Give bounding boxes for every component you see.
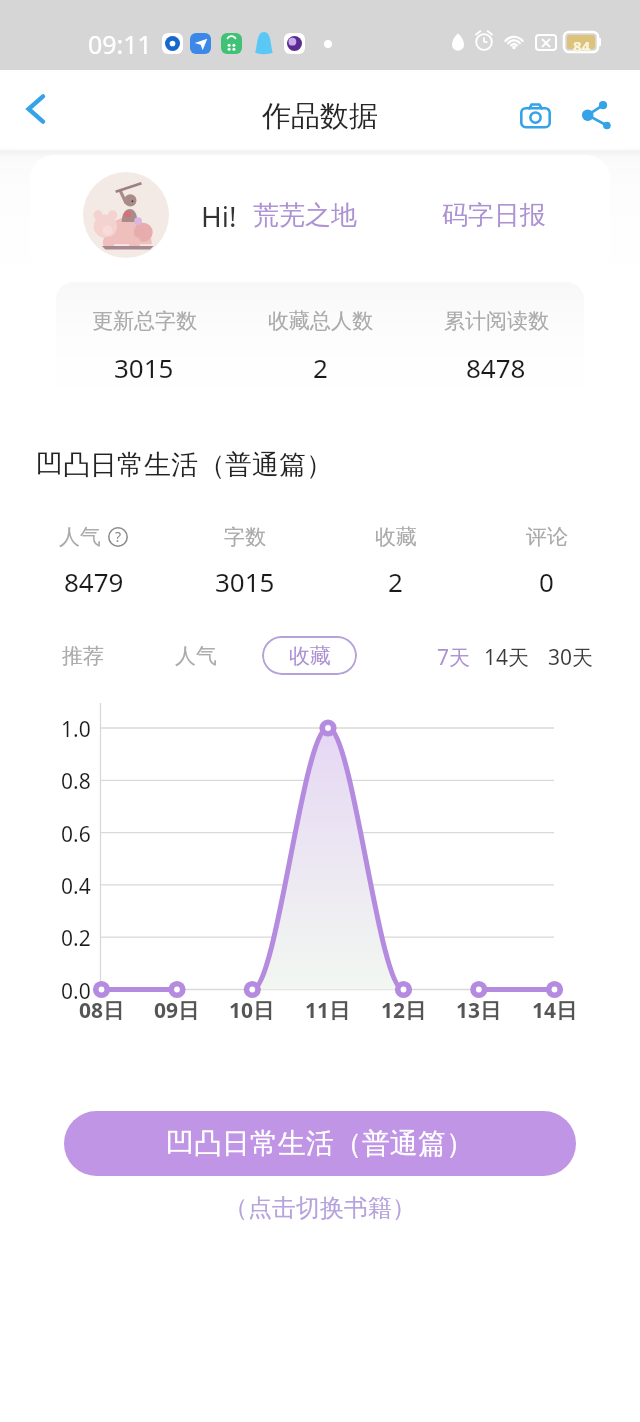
staticText: 14日	[532, 996, 578, 1025]
staticText: 推荐	[62, 643, 104, 669]
button[interactable]: Camera	[506, 87, 564, 145]
staticText: 30天	[548, 643, 594, 672]
staticText: 收藏	[289, 643, 331, 669]
staticText: 人气	[59, 524, 101, 550]
button[interactable]: 收藏	[262, 636, 357, 675]
staticText: 3015	[114, 350, 174, 385]
button[interactable]: Hi!	[30, 155, 610, 277]
button[interactable]: （点击切换书籍）	[200, 1190, 440, 1226]
staticText: 0	[539, 564, 554, 599]
staticText: （点击切换书籍）	[224, 1193, 416, 1223]
staticText: 凹凸日常生活（普通篇）	[166, 1126, 474, 1161]
staticText: 08日	[79, 996, 125, 1025]
staticText: 作品数据	[262, 98, 378, 135]
button[interactable]: Back	[4, 79, 64, 139]
staticText: 字数	[224, 524, 266, 550]
staticText: 人气	[175, 643, 217, 669]
staticText: 13日	[456, 996, 502, 1025]
staticText: 8478	[466, 350, 526, 385]
staticText: 0.0	[61, 977, 91, 1006]
staticText: 14天	[484, 643, 530, 672]
staticText: 凹凸日常生活（普通篇）	[36, 448, 333, 482]
staticText: 09:11	[88, 27, 152, 61]
staticText: 收藏	[375, 524, 417, 550]
staticText: 3015	[215, 564, 275, 599]
button[interactable]: 7天	[426, 639, 482, 675]
staticText: 0.4	[61, 872, 91, 901]
staticText: 0.2	[61, 924, 91, 953]
button[interactable]: 14天	[479, 639, 535, 675]
button[interactable]: 推荐	[43, 636, 123, 675]
staticText: 7天	[437, 643, 471, 672]
staticText: 0.6	[61, 820, 91, 849]
staticText: 11日	[305, 996, 351, 1025]
staticText: 2	[388, 564, 403, 599]
staticText: 2	[313, 350, 328, 385]
staticText: 8479	[64, 564, 124, 599]
button[interactable]: Share	[568, 87, 626, 145]
button[interactable]: 30天	[543, 639, 599, 675]
staticText: 累计阅读数	[444, 308, 549, 334]
staticText: 84	[573, 36, 591, 56]
staticText: 码字日报	[442, 199, 546, 232]
staticText: 10日	[229, 996, 275, 1025]
button[interactable]: 凹凸日常生活（普通篇）	[64, 1111, 576, 1176]
staticText: 评论	[526, 524, 568, 550]
button[interactable]: 人气	[156, 636, 236, 675]
staticText: 更新总字数	[92, 308, 197, 334]
staticText: Hi!	[201, 197, 237, 235]
staticText: 12日	[381, 996, 427, 1025]
staticText: 09日	[154, 996, 200, 1025]
staticText: 收藏总人数	[268, 308, 373, 334]
staticText: ?	[115, 527, 122, 546]
staticText: 1.0	[61, 715, 91, 744]
staticText: 0.8	[61, 767, 91, 796]
staticText: 荒芜之地	[253, 199, 357, 232]
